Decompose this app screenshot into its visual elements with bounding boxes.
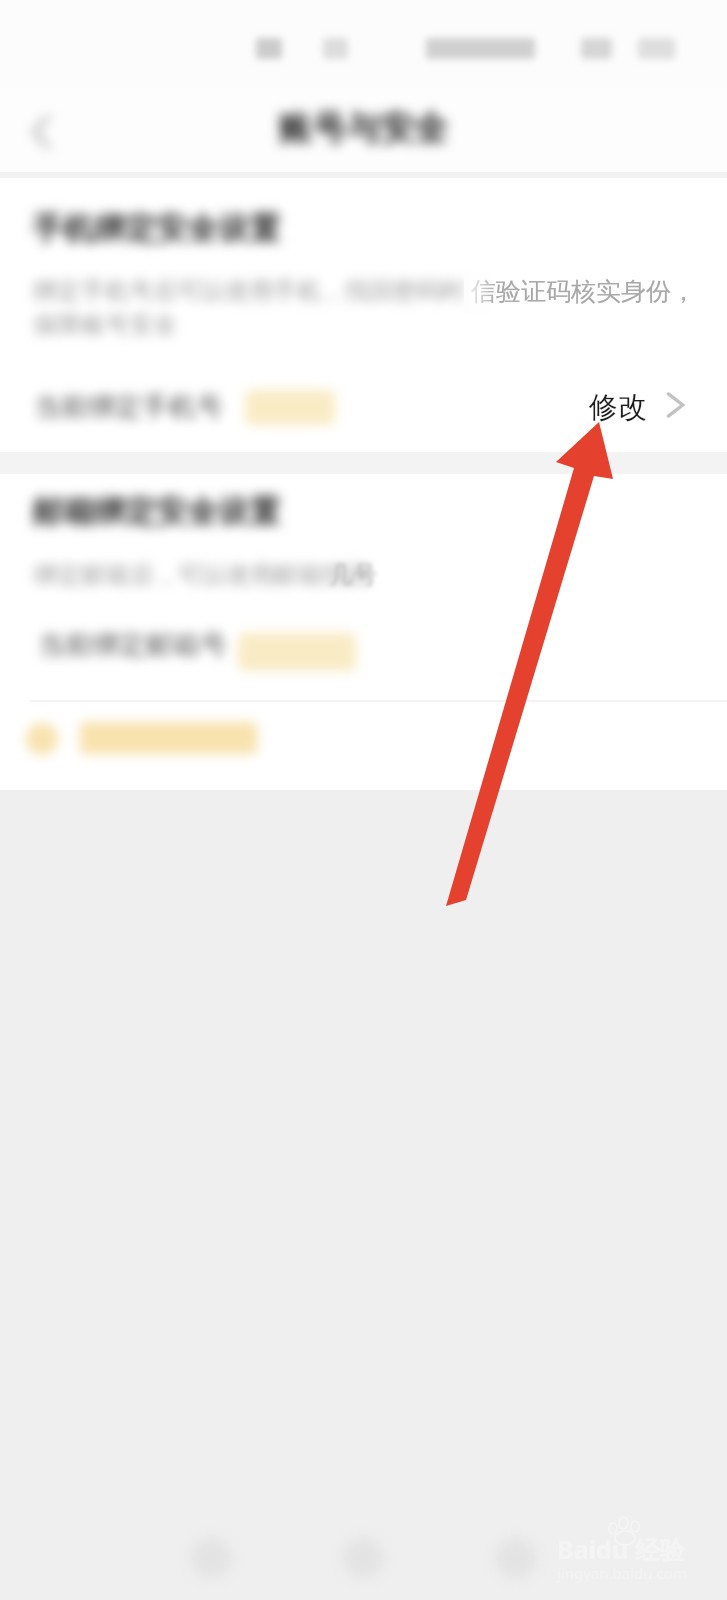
staticText: 手机绑定安全设置 — [32, 209, 280, 248]
staticText: 当前绑定邮箱号 — [38, 628, 227, 662]
button[interactable]: Back — [14, 104, 70, 160]
button[interactable]: Recents — [480, 1522, 552, 1594]
staticText: 绑定手机号后可以使用手机，找回密码时 — [33, 276, 465, 306]
staticText: 当前绑定手机号 — [34, 390, 223, 424]
staticText: 修改 — [589, 389, 647, 426]
staticText: 几号 — [329, 560, 377, 590]
button[interactable]: 当前绑定手机号 — [0, 372, 727, 444]
staticText: 保障账号安全 — [33, 310, 177, 340]
staticText: 信验证码核实身份， — [471, 276, 696, 307]
button[interactable]: Back — [175, 1522, 247, 1594]
staticText: 账号与安全 — [278, 107, 448, 150]
button[interactable] — [0, 706, 727, 776]
button[interactable]: 当前绑定邮箱号 — [0, 612, 727, 682]
staticText: 绑定邮箱后，可以使用邮箱找回 — [34, 560, 370, 590]
staticText: 邮箱绑定安全设置 — [32, 492, 280, 531]
button[interactable]: Home — [327, 1522, 399, 1594]
